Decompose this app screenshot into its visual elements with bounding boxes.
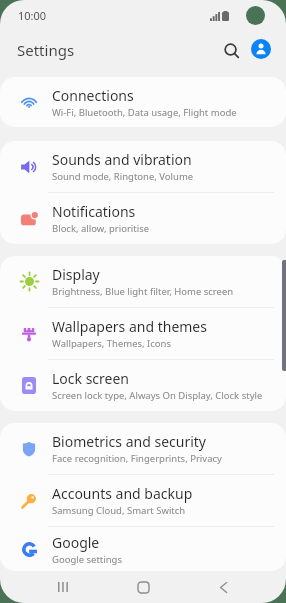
button[interactable]: Account	[251, 39, 271, 59]
staticText: Sound mode, Ringtone, Volume	[52, 170, 194, 183]
staticText: Face recognition, Fingerprints, Privacy	[52, 452, 222, 465]
button[interactable]: Sounds and vibration	[0, 141, 286, 192]
staticText: Biometrics and security	[52, 432, 206, 451]
button[interactable]: Lock screen	[0, 360, 286, 411]
staticText: Google	[52, 533, 100, 552]
staticText: Sounds and vibration	[52, 150, 192, 169]
button[interactable]: Display	[0, 256, 286, 307]
button[interactable]: Search	[219, 38, 245, 64]
staticText: Wi-Fi, Bluetooth, Data usage, Flight mod…	[52, 106, 237, 119]
staticText: Screen lock type, Always On Display, Clo…	[52, 389, 263, 402]
button[interactable]: Recent apps	[45, 571, 81, 603]
staticText: 10:00	[18, 8, 47, 23]
button[interactable]: Home	[125, 571, 161, 603]
staticText: Block, allow, prioritise	[52, 222, 150, 235]
staticText: Display	[52, 265, 100, 284]
button[interactable]: Notifications	[0, 193, 286, 244]
button[interactable]: Biometrics and security	[0, 423, 286, 474]
staticText: Samsung Cloud, Smart Switch	[52, 504, 186, 517]
button[interactable]: Connections	[0, 77, 286, 127]
staticText: Wallpapers and themes	[52, 317, 207, 336]
staticText: Notifications	[52, 202, 136, 221]
staticText: Brightness, Blue light filter, Home scre…	[52, 285, 234, 298]
button[interactable]: Back	[205, 571, 241, 603]
staticText: Connections	[52, 86, 134, 105]
button[interactable]: Google	[0, 527, 286, 571]
staticText: Settings	[17, 40, 75, 60]
staticText: Accounts and backup	[52, 484, 193, 503]
staticText: Lock screen	[52, 369, 130, 388]
button[interactable]: Wallpapers and themes	[0, 308, 286, 359]
button[interactable]: Accounts and backup	[0, 475, 286, 526]
staticText: Wallpapers, Themes, Icons	[52, 337, 172, 350]
staticText: Google settings	[52, 553, 123, 566]
